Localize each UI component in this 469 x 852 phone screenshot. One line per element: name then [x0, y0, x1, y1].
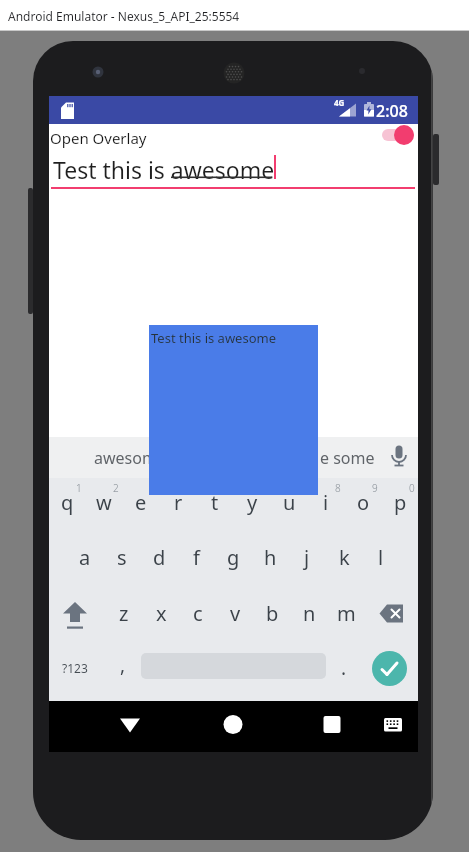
button[interactable]: r — [158, 486, 198, 518]
button[interactable]: ?123 — [57, 652, 93, 684]
button[interactable]: s — [102, 541, 142, 573]
staticText: v — [230, 600, 241, 627]
button[interactable]: Test this is awesome — [49, 154, 418, 190]
button[interactable]: Test this is awesome — [149, 325, 318, 495]
staticText: w — [96, 489, 112, 516]
staticText: t — [211, 489, 219, 516]
staticText: p — [394, 489, 407, 516]
button[interactable]: b — [252, 597, 292, 629]
staticText: j — [304, 544, 310, 571]
button[interactable] — [379, 604, 407, 624]
staticText: 9 — [372, 481, 378, 495]
staticText: m — [337, 600, 356, 627]
staticText: n — [303, 600, 316, 627]
staticText: x — [156, 600, 167, 627]
button[interactable]: x — [141, 597, 181, 629]
button[interactable]: c — [178, 597, 218, 629]
button[interactable]: j — [287, 541, 327, 573]
staticText: 0 — [409, 481, 415, 495]
staticText: 8 — [335, 481, 341, 495]
staticText: 1 — [76, 481, 82, 495]
staticText: . — [341, 655, 347, 681]
button[interactable] — [394, 125, 414, 145]
button[interactable]: f — [176, 541, 216, 573]
button[interactable]: z — [104, 597, 144, 629]
staticText: y — [247, 489, 258, 516]
button[interactable]: m — [326, 597, 366, 629]
button[interactable]: u — [269, 486, 309, 518]
staticText: u — [283, 489, 296, 516]
button[interactable]: q — [47, 486, 87, 518]
button[interactable]: d — [139, 541, 179, 573]
staticText: 2 — [113, 481, 119, 495]
staticText: z — [119, 600, 129, 627]
button[interactable]: e — [121, 486, 161, 518]
staticText: ?123 — [62, 660, 88, 676]
staticText: s — [117, 544, 127, 571]
staticText: i — [323, 489, 329, 516]
staticText: a — [79, 544, 91, 571]
staticText: e — [135, 489, 147, 516]
button[interactable]: n — [289, 597, 329, 629]
button[interactable] — [372, 651, 407, 686]
staticText: d — [153, 544, 166, 571]
button[interactable]: g — [213, 541, 253, 573]
staticText: f — [193, 544, 200, 571]
staticText: q — [61, 489, 74, 516]
staticText: b — [266, 600, 279, 627]
button[interactable]: o — [343, 486, 383, 518]
button[interactable]: . — [324, 652, 364, 684]
button[interactable]: i — [306, 486, 346, 518]
staticText: o — [357, 489, 370, 516]
button[interactable] — [110, 704, 150, 749]
button[interactable]: Open Overlay — [49, 124, 418, 154]
staticText: e some — [320, 447, 375, 469]
staticText: Open Overlay — [50, 128, 147, 148]
button[interactable]: , — [103, 649, 143, 681]
staticText: c — [193, 600, 203, 627]
staticText: 2:08 — [376, 100, 408, 122]
button[interactable] — [61, 601, 89, 629]
button[interactable]: h — [250, 541, 290, 573]
button[interactable]: t — [195, 486, 235, 518]
button[interactable]: p — [380, 486, 420, 518]
button[interactable] — [373, 704, 413, 749]
button[interactable]: l — [361, 541, 401, 573]
staticText: Android Emulator - Nexus_5_API_25:5554 — [8, 8, 240, 24]
button[interactable]: v — [215, 597, 255, 629]
staticText: Test this is awesome — [53, 154, 275, 185]
staticText: r — [174, 489, 183, 516]
staticText: Test this is awesome — [151, 329, 277, 347]
button[interactable]: a — [65, 541, 105, 573]
staticText: k — [339, 544, 350, 571]
button[interactable] — [213, 704, 253, 749]
button[interactable]: y — [232, 486, 272, 518]
button[interactable] — [49, 437, 172, 478]
button[interactable] — [389, 444, 409, 471]
button[interactable] — [312, 704, 352, 749]
staticText: awesome — [94, 447, 166, 469]
staticText: l — [378, 544, 384, 571]
staticText: 4G — [334, 97, 345, 108]
staticText: h — [264, 544, 277, 571]
staticText: , — [120, 652, 126, 678]
button[interactable]: w — [84, 486, 124, 518]
button[interactable]: k — [324, 541, 364, 573]
staticText: g — [227, 544, 240, 571]
